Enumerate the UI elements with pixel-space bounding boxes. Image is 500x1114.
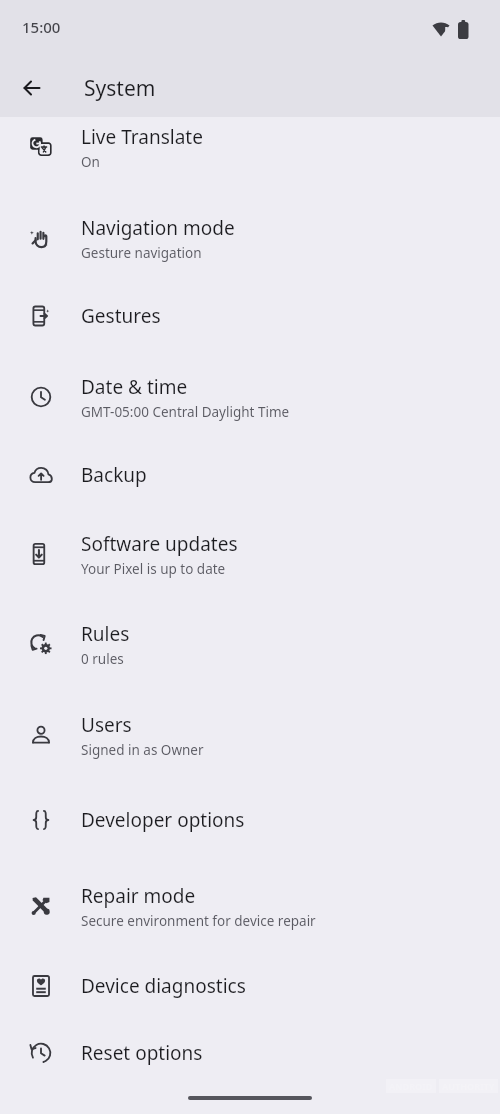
button[interactable]: Gestures — [0, 284, 500, 348]
button[interactable]: Back — [8, 64, 56, 112]
staticText: Device diagnostics — [81, 973, 246, 999]
button[interactable]: Date & time — [0, 359, 500, 435]
staticText: 15:00 — [22, 17, 61, 37]
staticText: Signed in as Owner — [81, 741, 204, 759]
staticText: Users — [81, 712, 132, 738]
staticText: Secure environment for device repair — [81, 912, 316, 930]
button[interactable]: Repair mode — [0, 868, 500, 944]
button[interactable]: Developer options — [0, 788, 500, 852]
staticText: 0 rules — [81, 650, 124, 668]
staticText: Your Pixel is up to date — [81, 560, 226, 578]
staticText: Repair mode — [81, 883, 196, 909]
button[interactable]: Software updates — [0, 516, 500, 592]
button[interactable]: Navigation mode — [0, 200, 500, 276]
staticText: Live Translate — [81, 124, 203, 150]
staticText: Software updates — [81, 531, 238, 557]
staticText: Backup — [81, 462, 147, 488]
staticText: Date & time — [81, 374, 188, 400]
staticText: On — [81, 153, 100, 171]
button[interactable]: Live Translate — [0, 109, 500, 185]
staticText: Navigation mode — [81, 215, 235, 241]
staticText: System — [84, 74, 156, 103]
button[interactable]: Rules — [0, 606, 500, 682]
staticText: GMT-05:00 Central Daylight Time — [81, 403, 290, 421]
staticText: Gesture navigation — [81, 244, 202, 262]
staticText: Gestures — [81, 303, 161, 329]
staticText: Developer options — [81, 807, 245, 833]
button[interactable]: Reset options — [0, 1021, 500, 1085]
button[interactable]: Users — [0, 697, 500, 773]
staticText: Rules — [81, 621, 130, 647]
button[interactable]: Backup — [0, 443, 500, 507]
button[interactable]: Device diagnostics — [0, 954, 500, 1018]
staticText: Reset options — [81, 1040, 203, 1066]
